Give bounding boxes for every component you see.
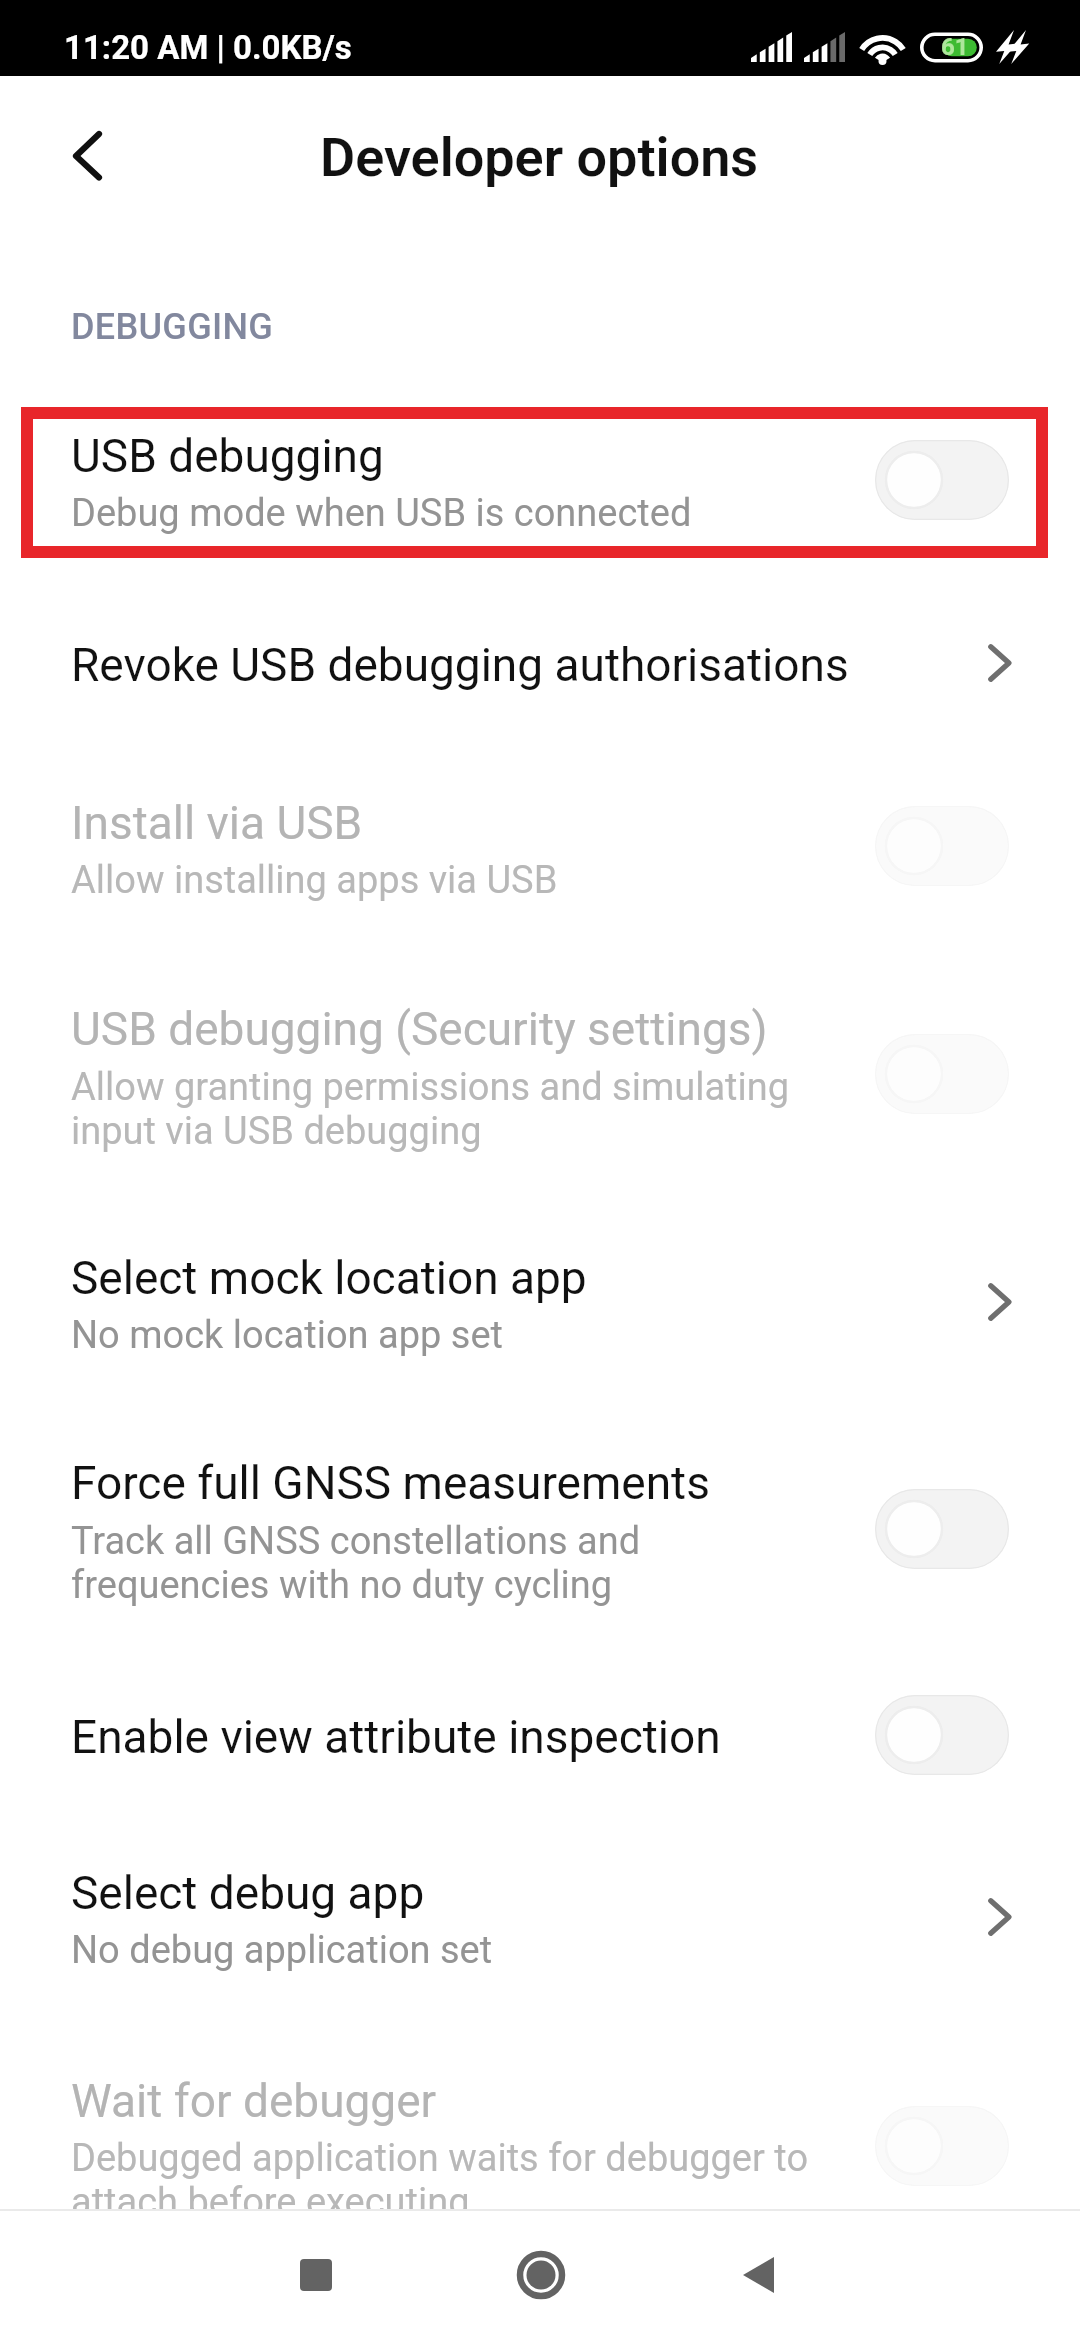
button[interactable]: Open xyxy=(965,1882,1035,1952)
button[interactable] xyxy=(0,1422,1080,1622)
staticText: Enable view attribute inspection xyxy=(71,1710,721,1764)
staticText: Track all GNSS constellations and freque… xyxy=(71,1519,641,1607)
staticText: Force full GNSS measurements xyxy=(71,1456,710,1510)
staticText: USB debugging xyxy=(71,429,384,483)
staticText: No debug application set xyxy=(71,1928,493,1973)
button[interactable] xyxy=(0,1676,1080,1815)
button[interactable]: Toggle xyxy=(875,440,1009,520)
staticText: Wait for debugger xyxy=(71,2074,437,2128)
button[interactable] xyxy=(0,2040,1080,2239)
button[interactable]: Back xyxy=(42,110,134,202)
staticText: Debug mode when USB is connected xyxy=(71,491,692,536)
staticText: USB debugging (Security settings) xyxy=(71,1002,768,1056)
staticText: 61 xyxy=(941,33,969,61)
staticText: Revoke USB debugging authorisations xyxy=(71,638,849,692)
staticText: Install via USB xyxy=(71,796,363,850)
button[interactable] xyxy=(0,1217,1080,1372)
button[interactable]: Back xyxy=(700,2215,820,2335)
staticText: Select mock location app xyxy=(71,1251,587,1305)
button[interactable]: Recent apps xyxy=(256,2215,376,2335)
button[interactable]: Home xyxy=(481,2215,601,2335)
button[interactable] xyxy=(0,604,1080,743)
button[interactable] xyxy=(0,1832,1080,1987)
staticText: Debugged application waits for debugger … xyxy=(71,2136,809,2224)
staticText: Developer options xyxy=(320,126,759,189)
staticText: 11:20 AM | 0.0KB/s xyxy=(64,28,352,67)
button[interactable]: Open xyxy=(965,628,1035,698)
button[interactable] xyxy=(0,968,1080,1168)
staticText: DEBUGGING xyxy=(71,306,274,348)
staticText: Allow installing apps via USB xyxy=(71,858,558,903)
button[interactable]: Toggle xyxy=(875,1695,1009,1775)
staticText: No mock location app set xyxy=(71,1313,503,1358)
staticText: Select debug app xyxy=(71,1866,425,1920)
staticText: Allow granting permissions and simulatin… xyxy=(71,1065,790,1153)
button[interactable]: Open xyxy=(965,1267,1035,1337)
button[interactable] xyxy=(0,762,1080,917)
button[interactable] xyxy=(0,395,1080,550)
button[interactable]: Toggle xyxy=(875,1489,1009,1569)
